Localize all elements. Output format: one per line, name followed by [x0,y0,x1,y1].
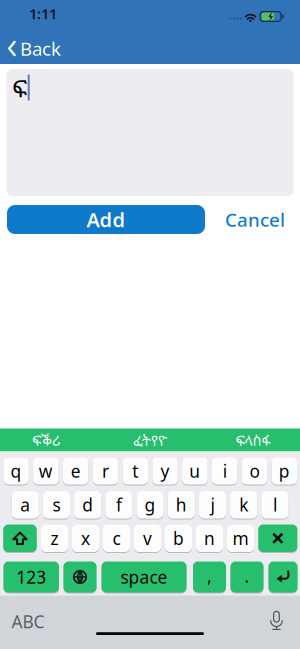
staticText: y [161,459,170,482]
staticText: z [50,527,58,550]
button[interactable]: ፍላስፋ [208,428,298,451]
button[interactable]: y [152,457,178,484]
button[interactable]: , [193,561,226,592]
button[interactable]: l [261,491,288,518]
button[interactable]: s [43,491,70,518]
staticText: l [273,493,277,516]
button[interactable]: i [212,457,237,484]
button[interactable]: a [12,491,39,518]
staticText: h [176,493,187,516]
staticText: o [249,459,259,482]
button[interactable]: d [74,491,101,518]
staticText: . [244,564,249,587]
button[interactable]: u [182,457,208,484]
staticText: j [210,493,214,516]
button[interactable]: space [101,561,186,592]
staticText: ፈትየዮ [133,430,167,450]
staticText: r [102,459,109,482]
staticText: i [223,459,227,482]
staticText: Add [86,206,125,233]
button[interactable]: Next keyboard [63,561,96,592]
staticText: k [239,493,248,516]
button[interactable]: g [136,491,164,518]
button[interactable]: 123 [3,561,59,592]
button[interactable]: t [122,457,148,484]
button[interactable]: c [103,524,130,552]
staticText: w [39,459,53,482]
staticText: Cancel [225,207,285,232]
button[interactable]: Shift [3,524,37,552]
button[interactable]: Dictate [268,610,284,630]
button[interactable]: m [227,524,254,552]
staticText: ፍ [12,72,27,104]
staticText: c [112,527,120,550]
button[interactable]: h [168,491,195,518]
button[interactable]: p [271,457,297,484]
staticText: a [20,493,30,516]
staticText: n [204,527,215,550]
button[interactable]: ፍቕሪ [1,428,91,451]
button[interactable]: Cancel [217,205,293,234]
button[interactable]: e [63,457,88,484]
button[interactable]: q [3,457,29,484]
staticText: g [145,493,156,516]
button[interactable]: . [230,561,263,592]
staticText: v [143,527,152,550]
staticText: t [132,459,138,482]
button[interactable]: b [165,524,192,552]
staticText: ABC [11,610,44,633]
staticText: m [232,527,248,550]
button[interactable]: z [41,524,68,552]
button[interactable]: n [196,524,223,552]
staticText: ፍቕሪ [32,430,60,450]
staticText: 1:11 [29,4,57,23]
button[interactable]: x [72,524,99,552]
staticText: 123 [16,565,46,588]
button[interactable]: o [242,457,267,484]
staticText: Back [20,36,61,61]
button[interactable]: j [199,491,226,518]
button[interactable]: Back [8,31,61,65]
staticText: space [120,565,167,588]
button[interactable]: f [105,491,132,518]
button[interactable]: Delete [258,524,297,552]
button[interactable]: Add [7,205,205,234]
staticText: p [279,459,290,482]
staticText: e [71,459,81,482]
staticText: d [82,493,93,516]
button[interactable]: k [230,491,257,518]
staticText: ፍላስፋ [235,430,270,450]
staticText: q [11,459,22,482]
button[interactable]: Return [268,561,297,592]
button[interactable]: ABC [3,606,53,636]
button[interactable]: w [33,457,59,484]
staticText: , [207,564,212,587]
staticText: x [81,527,90,550]
button[interactable]: v [134,524,161,552]
staticText: s [52,493,60,516]
staticText: b [173,527,184,550]
button[interactable]: ፈትየዮ [105,428,195,451]
staticText: f [116,493,122,516]
button[interactable]: r [93,457,118,484]
staticText: u [189,459,200,482]
